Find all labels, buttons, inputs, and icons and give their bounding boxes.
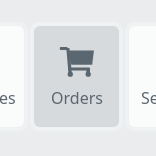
staticText: Orders	[51, 87, 103, 109]
other: Orders	[34, 26, 85, 101]
staticText: Settings	[141, 87, 156, 109]
staticText: Favorites	[0, 87, 16, 109]
button[interactable]: Favorites	[0, 26, 24, 127]
button[interactable]: Orders	[34, 26, 119, 127]
button[interactable]: Settings	[129, 26, 156, 127]
